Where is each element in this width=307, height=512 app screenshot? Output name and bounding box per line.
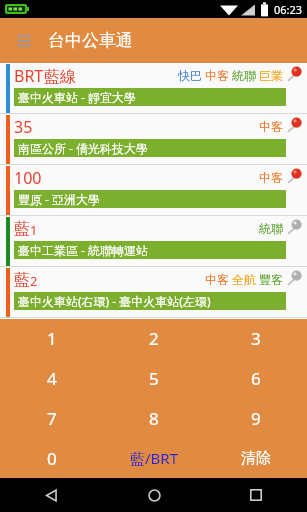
- staticText: 35: [14, 116, 33, 138]
- staticText: 台中公車通: [48, 30, 133, 51]
- staticText: 8: [149, 407, 159, 430]
- button[interactable]: BRT: [0, 63, 307, 114]
- staticText: 9: [251, 407, 261, 430]
- button[interactable]: Home: [103, 478, 205, 512]
- staticText: 中客: [205, 272, 229, 287]
- button[interactable]: 100: [0, 165, 307, 216]
- button[interactable]: 0: [0, 438, 103, 478]
- button[interactable]: 藍: [0, 267, 307, 318]
- button[interactable]: Recents: [205, 478, 307, 512]
- staticText: 3: [251, 327, 261, 350]
- staticText: 臺中工業區 - 統聯轉運站: [18, 242, 149, 258]
- staticText: 全航: [232, 272, 256, 287]
- staticText: 巨業: [259, 68, 283, 83]
- button[interactable]: 9: [205, 398, 307, 438]
- staticText: 快巴: [178, 68, 202, 83]
- staticText: 06:23: [274, 2, 303, 17]
- button[interactable]: 5: [103, 358, 205, 398]
- button[interactable]: 清除: [205, 438, 307, 478]
- button[interactable]: 6: [205, 358, 307, 398]
- button[interactable]: 35: [0, 114, 307, 165]
- staticText: 1: [47, 327, 57, 350]
- button[interactable]: Back: [0, 478, 103, 512]
- staticText: 統聯: [259, 221, 283, 236]
- button[interactable]: 8: [103, 398, 205, 438]
- button[interactable]: 2: [103, 319, 205, 358]
- staticText: 南區公所 - 僑光科技大學: [18, 140, 149, 156]
- staticText: 4: [47, 367, 57, 390]
- staticText: 藍: [14, 270, 30, 290]
- button[interactable]: Menu: [12, 29, 36, 53]
- staticText: 100: [14, 167, 42, 189]
- staticText: 清除: [241, 449, 271, 468]
- staticText: 中客: [205, 68, 229, 83]
- button[interactable]: 7: [0, 398, 103, 438]
- staticText: 藍/BRT: [130, 448, 179, 468]
- staticText: 5: [149, 367, 159, 390]
- staticText: 2: [30, 272, 38, 290]
- staticText: 藍線: [44, 67, 76, 87]
- staticText: BRT: [14, 65, 44, 87]
- staticText: 6: [251, 367, 261, 390]
- staticText: 統聯: [232, 68, 256, 83]
- staticText: 豐客: [259, 272, 283, 287]
- button[interactable]: 3: [205, 319, 307, 358]
- staticText: 0: [47, 447, 57, 470]
- staticText: 臺中火車站 - 靜宜大學: [18, 89, 137, 105]
- staticText: 豐原 - 亞洲大學: [18, 191, 101, 207]
- staticText: 臺中火車站(右環) - 臺中火車站(左環): [18, 293, 211, 309]
- staticText: 7: [47, 407, 57, 430]
- button[interactable]: 藍: [0, 216, 307, 267]
- staticText: 藍: [14, 219, 30, 239]
- button[interactable]: 藍/BRT: [103, 438, 205, 478]
- staticText: 1: [30, 221, 38, 239]
- button[interactable]: 1: [0, 319, 103, 358]
- staticText: 中客: [259, 170, 283, 185]
- button[interactable]: 4: [0, 358, 103, 398]
- staticText: 2: [149, 327, 159, 350]
- staticText: 中客: [259, 119, 283, 134]
